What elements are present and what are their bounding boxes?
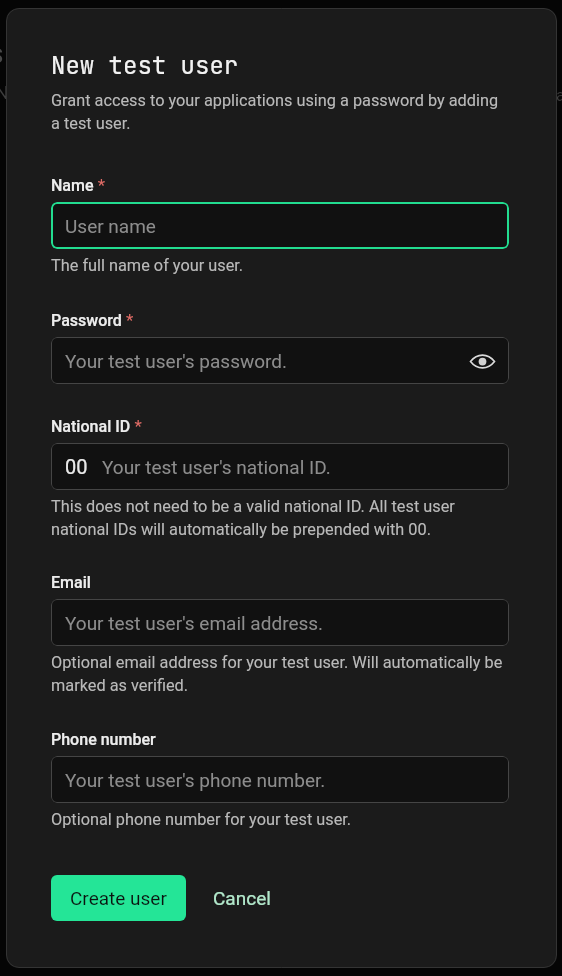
staticText: This does not need to be a valid nationa… xyxy=(51,497,506,539)
staticText: Your test user's national ID. xyxy=(102,456,331,478)
staticText: Grant access to your applications using … xyxy=(51,91,506,133)
staticText: 00 xyxy=(65,455,88,478)
staticText: Cancel xyxy=(213,887,271,909)
staticText: User name xyxy=(65,215,156,237)
staticText: Phone number xyxy=(51,730,156,749)
staticText: a xyxy=(556,86,562,105)
button[interactable]: Your test user's password. xyxy=(51,337,509,384)
staticText: Email xyxy=(51,573,91,592)
staticText: Create user xyxy=(70,887,167,909)
button[interactable]: Cancel xyxy=(194,875,290,921)
staticText: The full name of your user. xyxy=(51,256,506,275)
button[interactable]: User name xyxy=(51,202,509,249)
button[interactable]: Your test user's phone number. xyxy=(51,756,509,803)
staticText: Password * xyxy=(51,310,134,330)
staticText: Your test user's password. xyxy=(65,350,288,372)
button[interactable]: Create user xyxy=(51,875,186,921)
staticText: Optional phone number for your test user… xyxy=(51,810,506,829)
button[interactable]: Show password xyxy=(467,346,497,376)
staticText: Your test user's phone number. xyxy=(65,769,326,791)
staticText: National ID * xyxy=(51,416,142,436)
staticText: Optional email address for your test use… xyxy=(51,653,506,695)
staticText: New test user xyxy=(51,50,239,82)
button[interactable]: 00 xyxy=(51,443,509,490)
staticText: Your test user's email address. xyxy=(65,612,324,634)
button[interactable]: Your test user's email address. xyxy=(51,599,509,646)
staticText: Name * xyxy=(51,175,106,195)
staticText: N xyxy=(0,81,9,103)
staticText: S xyxy=(0,44,3,69)
